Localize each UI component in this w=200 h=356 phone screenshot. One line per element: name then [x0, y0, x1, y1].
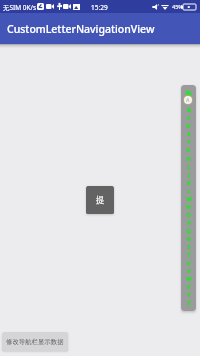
staticText: U: [186, 259, 191, 267]
staticText: O: [186, 211, 191, 219]
staticText: K: [187, 179, 191, 187]
staticText: D: [186, 122, 191, 130]
staticText: 热: [185, 90, 192, 98]
staticText: F: [187, 138, 191, 146]
staticText: 45%: [172, 3, 183, 10]
staticText: 15:29: [91, 3, 108, 12]
staticText: A: [186, 97, 190, 104]
staticText: G: [186, 146, 191, 154]
staticText: Q: [186, 227, 191, 235]
staticText: V: [187, 267, 191, 275]
staticText: N: [186, 203, 191, 211]
staticText: 无SIM 0K/s: [3, 3, 37, 12]
staticText: B: [187, 106, 191, 114]
staticText: M: [186, 195, 192, 203]
button[interactable]: Letter index A to Z: [181, 85, 196, 311]
staticText: P: [187, 219, 191, 227]
staticText: E: [187, 130, 191, 138]
staticText: T: [187, 251, 191, 259]
staticText: X: [186, 283, 191, 291]
staticText: Z: [187, 299, 191, 307]
staticText: 提: [96, 195, 105, 206]
staticText: I: [187, 163, 190, 171]
staticText: S: [187, 243, 191, 251]
staticText: 修改导航栏显示数据: [6, 338, 64, 346]
staticText: R: [187, 235, 191, 243]
staticText: L: [187, 187, 191, 195]
staticText: J: [188, 171, 190, 179]
staticText: H: [186, 155, 191, 163]
staticText: W: [186, 275, 192, 283]
staticText: A: [186, 98, 191, 106]
staticText: C: [187, 114, 191, 122]
staticText: CustomLetterNavigationView: [7, 22, 155, 36]
staticText: Y: [187, 291, 191, 299]
